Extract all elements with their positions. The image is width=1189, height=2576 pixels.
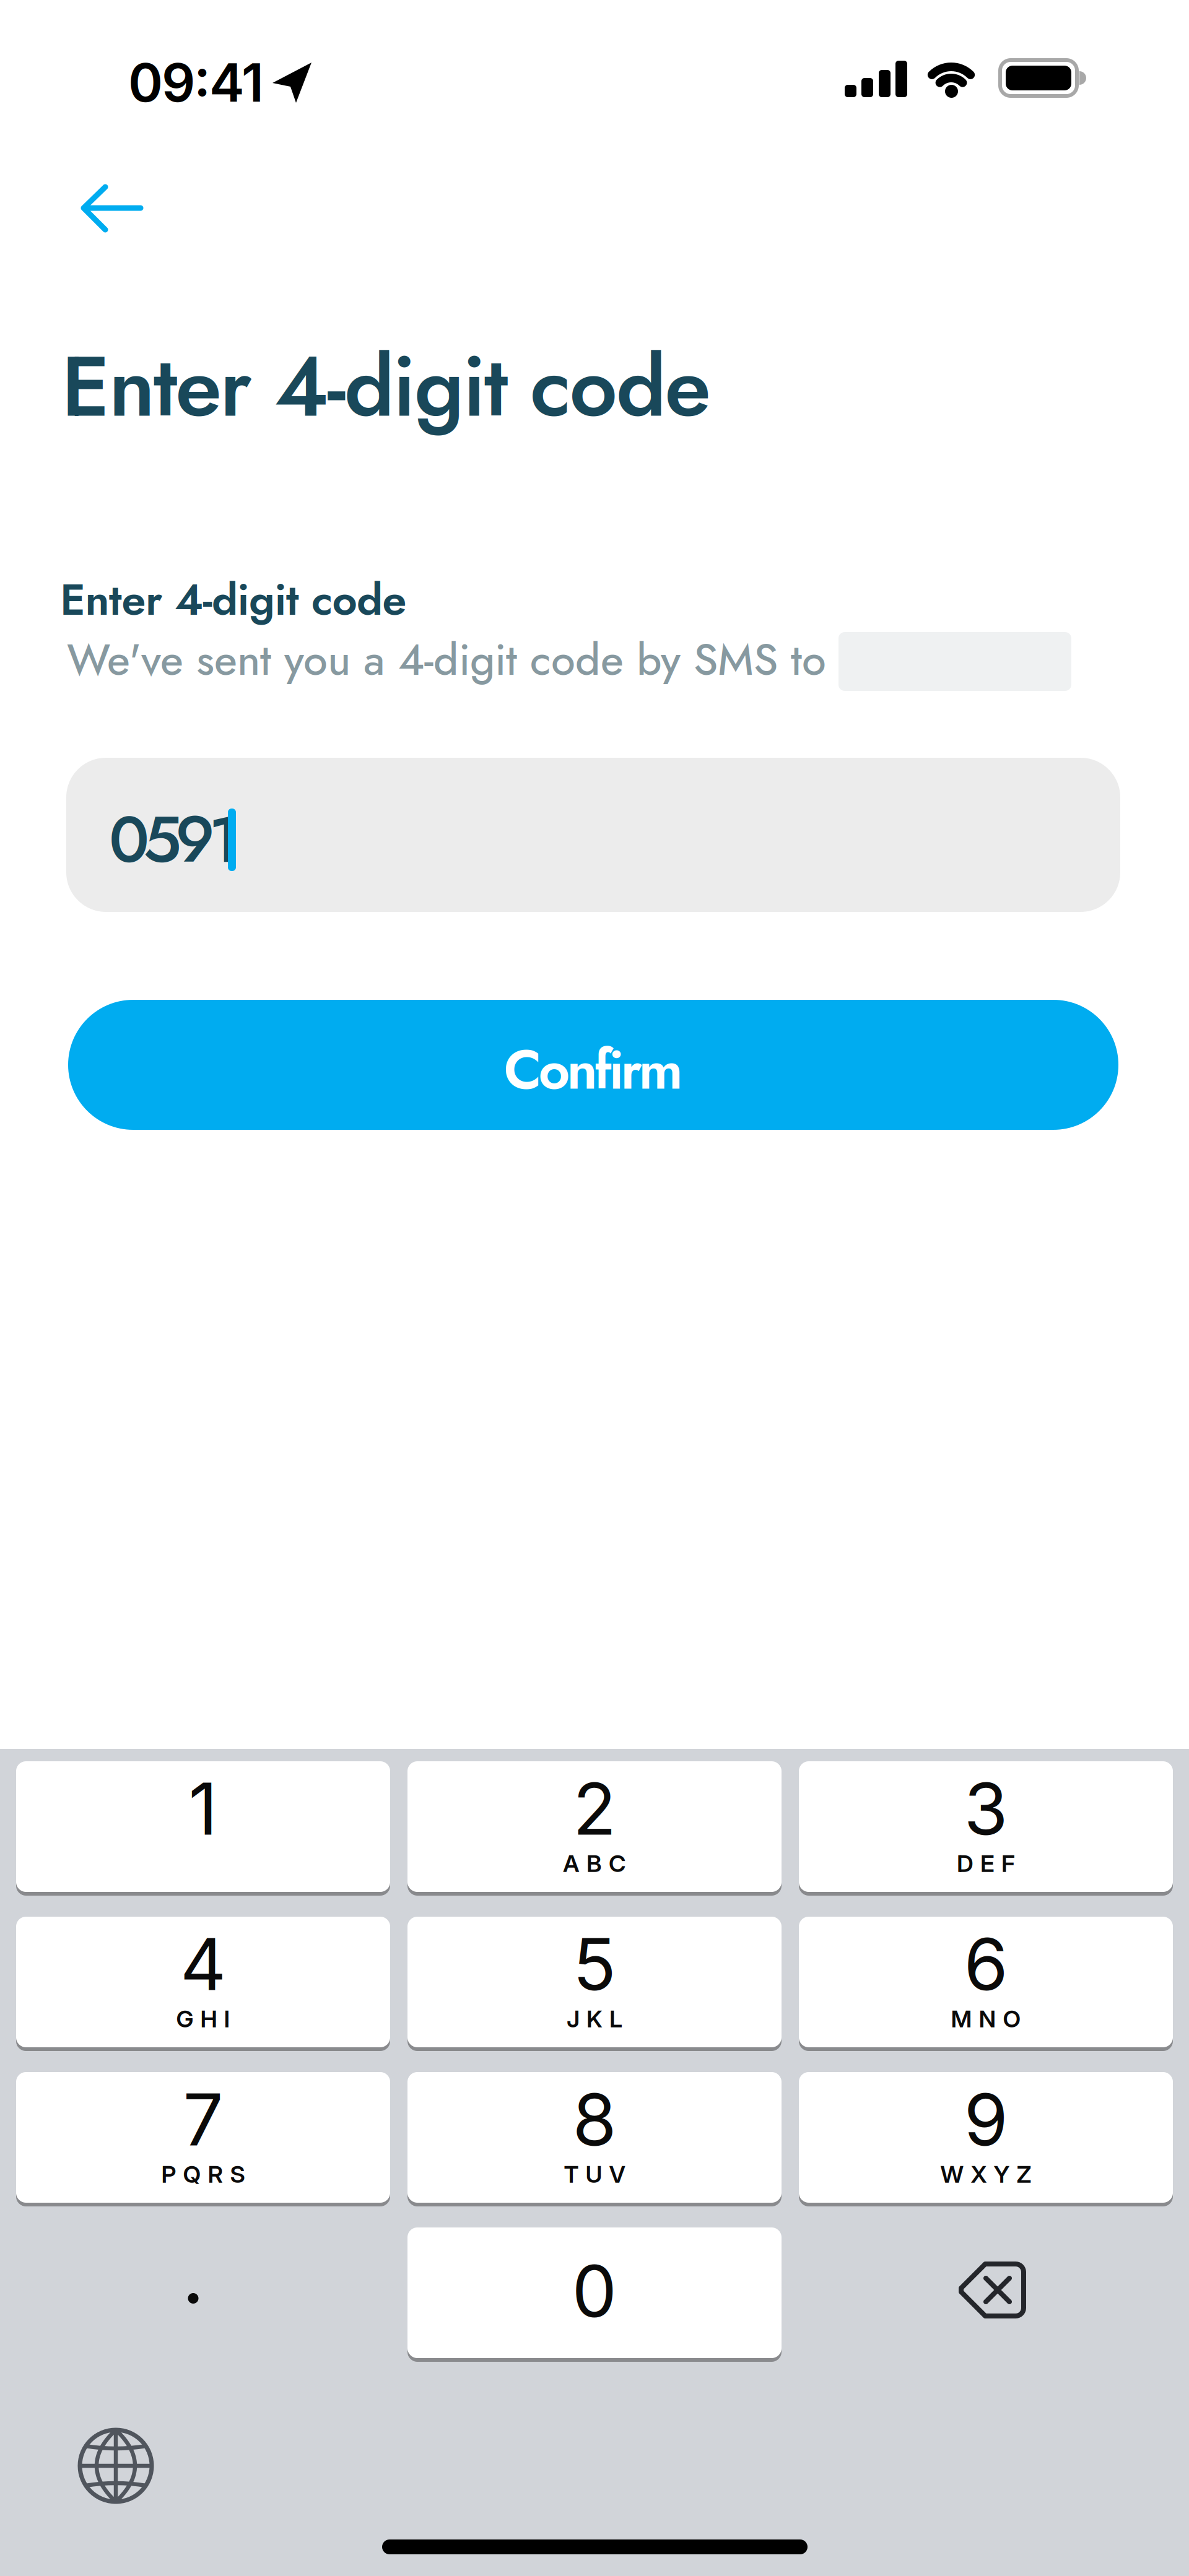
button[interactable]: 9 — [799, 2072, 1173, 2203]
button[interactable]: 2 — [407, 1761, 782, 1892]
button[interactable]: 8 — [407, 2072, 782, 2203]
staticText: TUV — [564, 2160, 625, 2188]
button[interactable]: 3 — [799, 1761, 1173, 1892]
button[interactable]: 6 — [799, 1917, 1173, 2047]
button[interactable]: 5 — [407, 1917, 782, 2047]
staticText: 5 — [573, 1921, 616, 2007]
button[interactable]: Decimal point — [16, 2227, 390, 2358]
button[interactable]: Confirm — [68, 1000, 1118, 1130]
staticText: 4 — [180, 1921, 226, 2007]
button[interactable]: 7 — [16, 2072, 390, 2203]
staticText: PQRS — [161, 2160, 245, 2188]
staticText: DEF — [957, 1849, 1015, 1878]
staticText: We've sent you a 4-digit code by SMS to — [67, 628, 826, 691]
button[interactable]: 4 — [16, 1917, 390, 2047]
staticText: 3 — [964, 1766, 1008, 1852]
staticText: Enter 4-digit code — [60, 568, 407, 631]
button[interactable]: Switch keyboard — [66, 2416, 165, 2515]
staticText: 09:41 — [128, 51, 264, 114]
staticText: JKL — [567, 2005, 622, 2033]
staticText: 1 — [189, 1766, 218, 1852]
staticText: ABC — [563, 1849, 626, 1878]
staticText: GHI — [176, 2005, 230, 2033]
staticText: 6 — [964, 1921, 1008, 2007]
staticText: Enter 4-digit code — [61, 326, 711, 447]
staticText: 9 — [964, 2076, 1008, 2163]
staticText: 8 — [573, 2076, 616, 2163]
staticText: MNO — [951, 2005, 1021, 2033]
button[interactable]: Back — [43, 171, 167, 245]
button[interactable]: 0 — [407, 2227, 782, 2358]
staticText: Confirm — [504, 1030, 683, 1109]
staticText: WXYZ — [940, 2160, 1031, 2188]
staticText: 0 — [572, 2248, 617, 2334]
staticText: 2 — [573, 1766, 616, 1852]
button[interactable]: 1 — [16, 1761, 390, 1892]
staticText: 7 — [183, 2076, 223, 2163]
staticText: 0591 — [109, 793, 239, 886]
button[interactable]: Delete — [799, 2227, 1173, 2358]
